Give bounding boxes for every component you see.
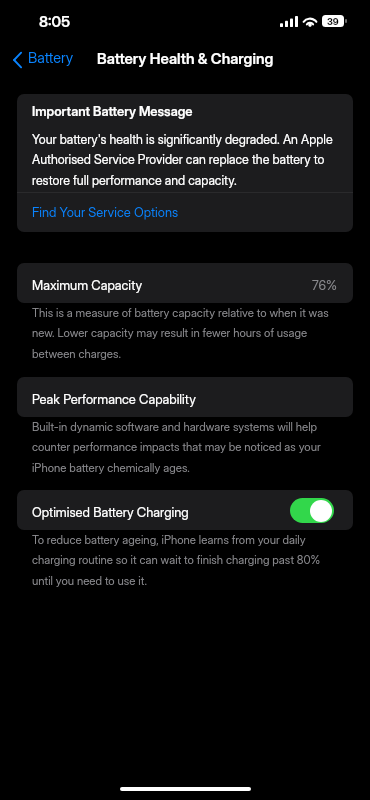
staticText: Find Your Service Options [32,204,179,220]
staticText: 8:05 [39,12,71,30]
button[interactable]: Peak Performance Capability [17,377,353,417]
staticText: Battery [28,49,74,67]
staticText: This is a measure of battery capacity re… [32,306,338,361]
staticText: To reduce battery ageing, iPhone learns … [32,533,338,588]
staticText: 39 [327,16,339,27]
button[interactable]: Find Your Service Options [17,193,353,232]
button[interactable]: Optimised Battery Charging toggle [290,498,334,523]
button[interactable]: Maximum Capacity [17,263,353,303]
button[interactable]: Battery [12,49,74,67]
button[interactable]: Optimised Battery Charging [17,490,353,530]
staticText: Peak Performance Capability [32,391,196,407]
staticText: Maximum Capacity [32,277,143,293]
staticText: Optimised Battery Charging [32,504,189,520]
staticText: Your battery's health is significantly d… [32,132,339,188]
staticText: Battery Health & Charging [97,49,274,67]
staticText: Important Battery Message [32,103,193,119]
staticText: Built-in dynamic software and hardware s… [32,420,338,475]
staticText: 76% [312,277,338,293]
